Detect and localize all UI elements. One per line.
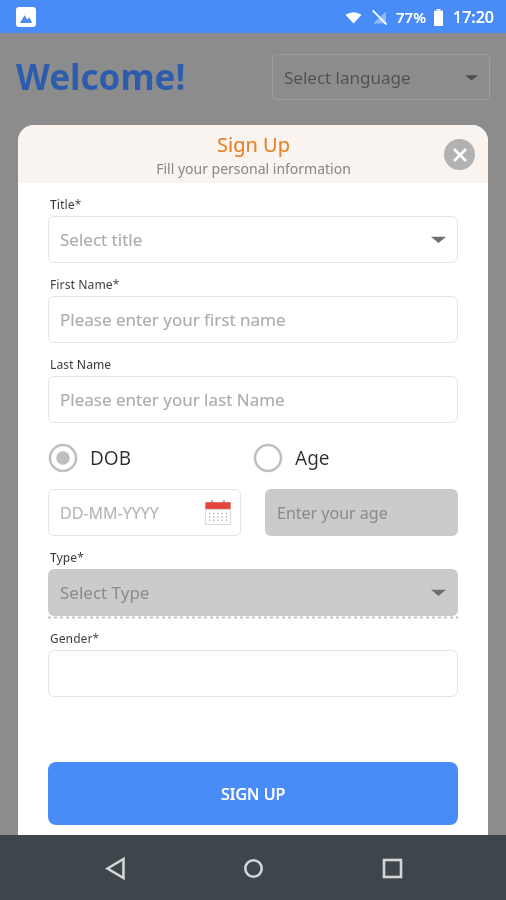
staticText: 77% (396, 7, 426, 27)
staticText: Sign Up (217, 131, 290, 158)
staticText: Type* (50, 549, 84, 565)
staticText: Please enter your last Name (60, 388, 285, 411)
staticText: Select Type (60, 581, 150, 604)
staticText: DD-MM-YYYY (60, 502, 159, 524)
button[interactable]: Enter your age (265, 489, 458, 536)
button[interactable]: Please enter your first name (48, 296, 458, 343)
staticText: Enter your age (277, 502, 388, 524)
staticText: 17:20 (453, 6, 494, 28)
staticText: SIGN UP (221, 783, 286, 805)
staticText: Age (295, 445, 330, 471)
staticText: Please enter your first name (60, 308, 286, 331)
button[interactable]: Please enter your last Name (48, 376, 458, 423)
button[interactable]: Back (91, 844, 139, 892)
staticText: Select language (284, 66, 411, 89)
button[interactable]: Home (229, 844, 277, 892)
staticText: Select title (60, 228, 143, 251)
button[interactable]: Select title (48, 216, 458, 263)
staticText: Title* (50, 196, 82, 212)
button[interactable]: Age (253, 439, 458, 477)
staticText: Fill your personal information (156, 159, 351, 178)
button[interactable]: Select language (272, 54, 490, 100)
button[interactable]: Close (444, 139, 475, 170)
staticText: DOB (90, 445, 132, 471)
button[interactable]: Select Type (48, 569, 458, 616)
button[interactable]: SIGN UP (48, 762, 458, 825)
button[interactable]: DOB (48, 439, 253, 477)
staticText: Last Name (50, 356, 112, 372)
button[interactable]: DD-MM-YYYY (48, 489, 241, 536)
staticText: Gender* (50, 630, 100, 646)
button[interactable] (48, 650, 458, 697)
staticText: First Name* (50, 276, 120, 292)
button[interactable]: Recent apps (368, 844, 416, 892)
staticText: Welcome! (16, 53, 186, 101)
